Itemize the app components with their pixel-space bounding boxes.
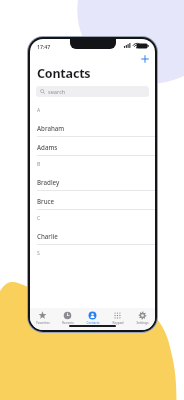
staticText: B [37,161,41,168]
button[interactable]: Settings [130,308,155,330]
staticText: Charlie [37,232,58,240]
button[interactable]: Favorites [30,308,55,330]
staticText: 17:47 [37,43,51,50]
staticText: Settings [136,321,149,325]
staticText: Contacts [37,65,91,82]
button[interactable]: search [36,86,149,97]
staticText: Keypad [112,321,124,325]
staticText: S [37,250,40,257]
staticText: Abraham [37,124,65,132]
button[interactable]: Keypad [105,308,130,330]
staticText: Adams [37,143,58,151]
button[interactable]: Bradley [30,172,155,191]
button[interactable]: Contacts [80,308,105,330]
button[interactable]: Adams [30,137,155,156]
staticText: search [48,88,66,96]
button[interactable]: Recents [55,308,80,330]
button[interactable]: Add contact [139,53,151,65]
staticText: Bruce [37,197,55,205]
button[interactable]: Charlie [30,226,155,245]
staticText: A [37,107,41,114]
staticText: C [37,215,41,222]
staticText: Favorites [36,321,50,325]
button[interactable]: Bruce [30,191,155,210]
button[interactable]: Abraham [30,118,155,137]
staticText: Bradley [37,178,60,186]
staticText: Contacts [86,321,100,325]
staticText: Recents [62,321,74,325]
